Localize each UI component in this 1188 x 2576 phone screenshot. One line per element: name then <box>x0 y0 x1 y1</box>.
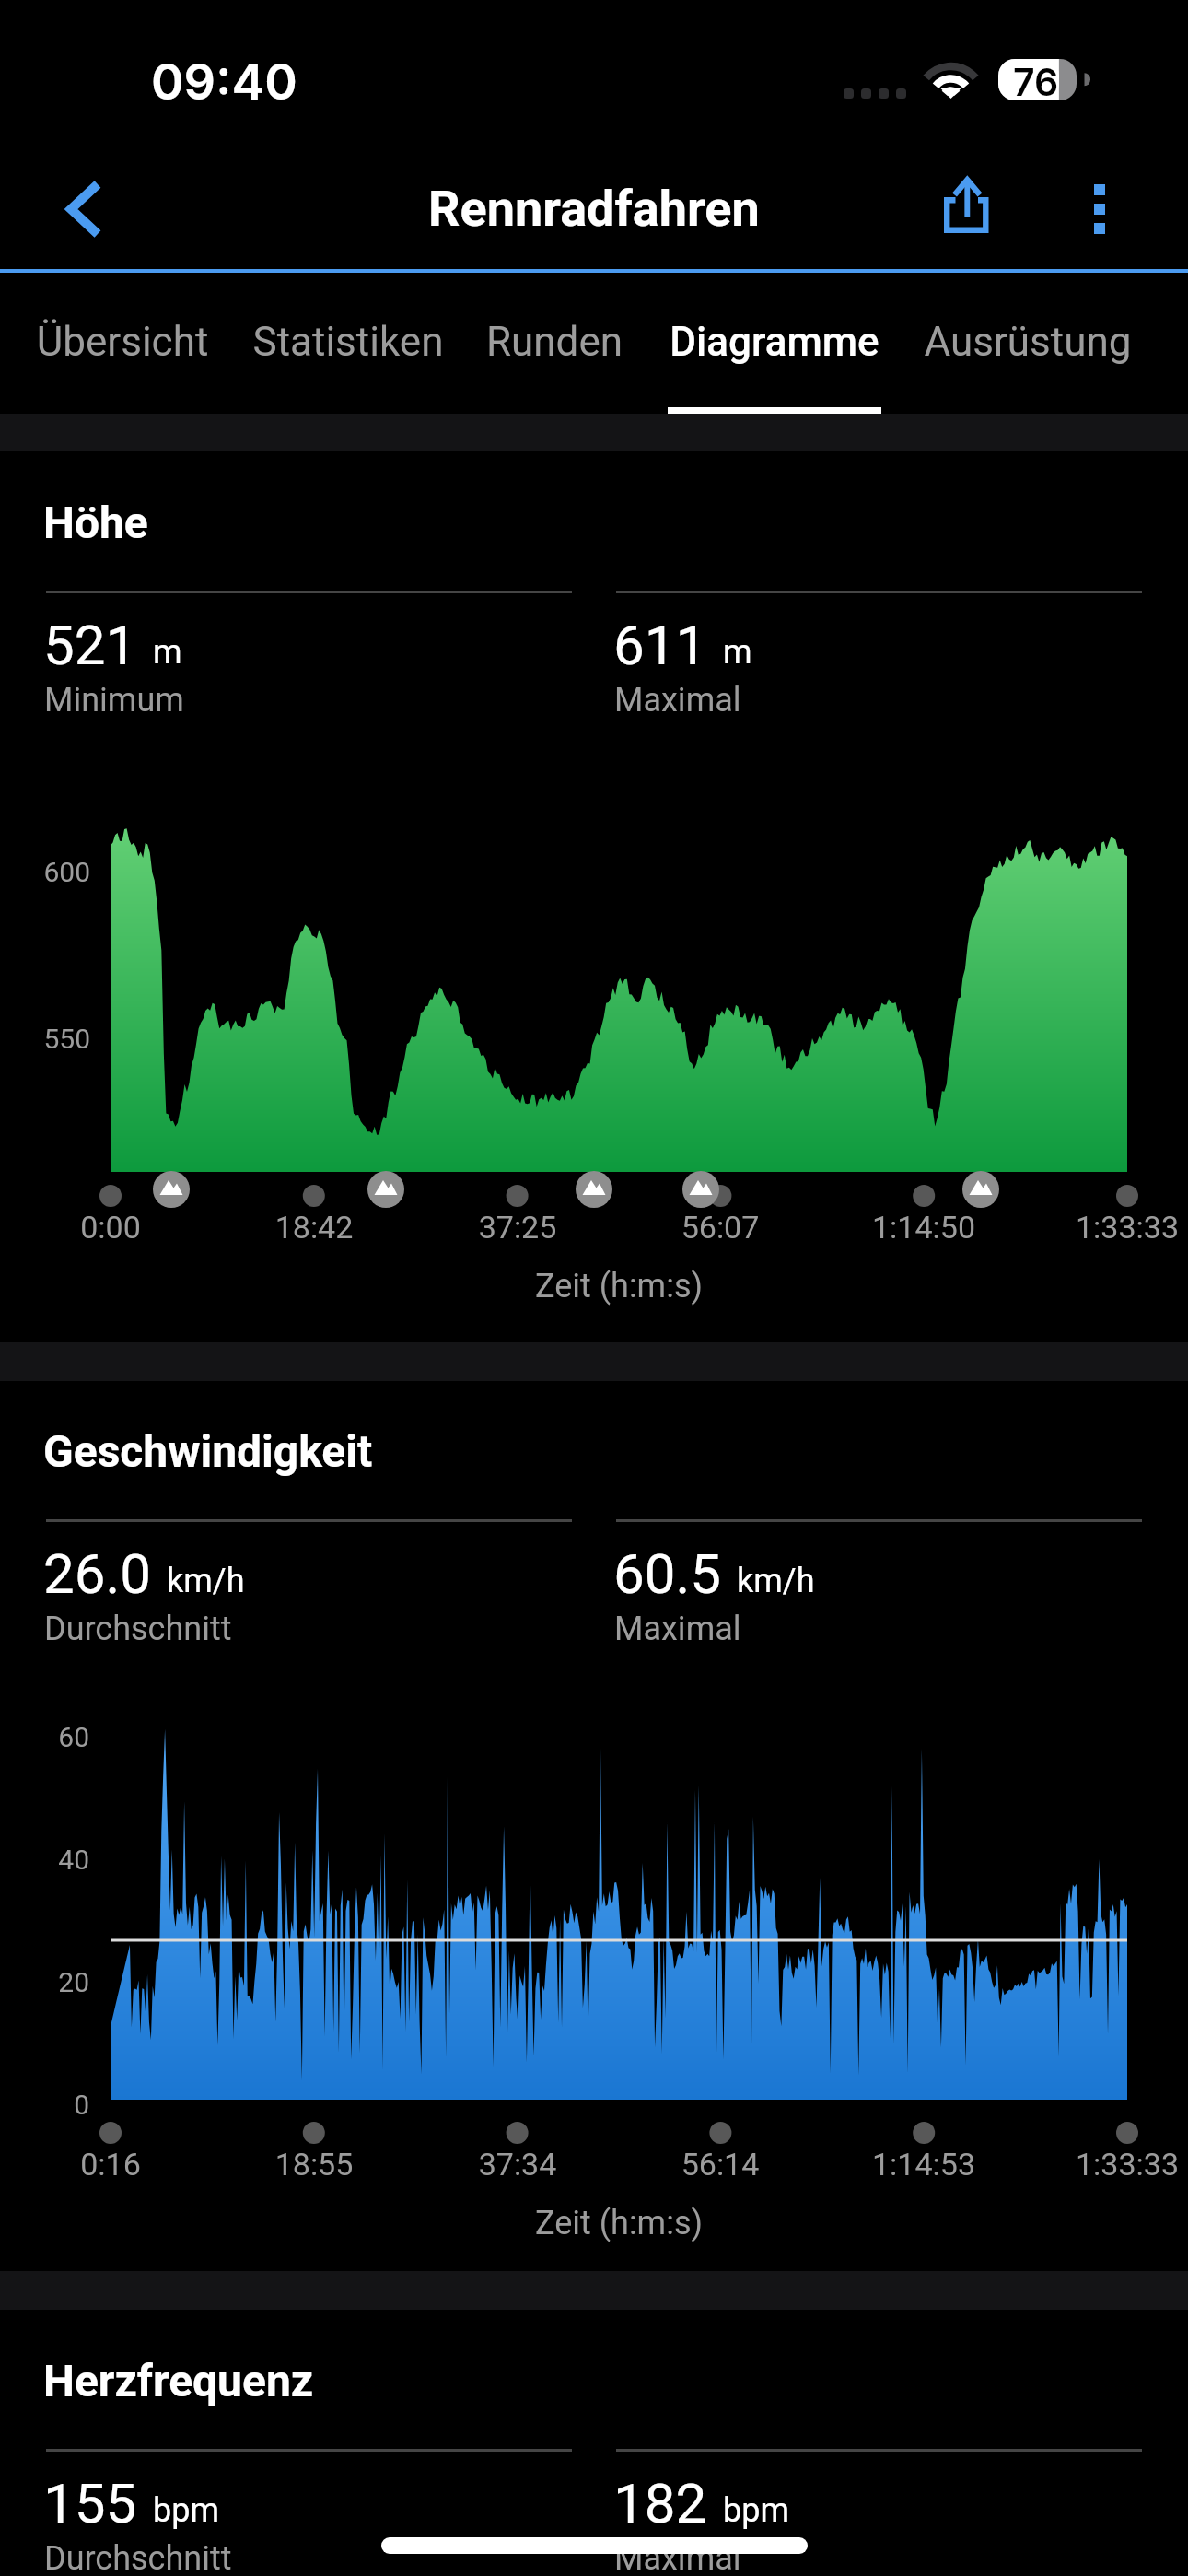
staticText: 60 <box>0 1721 89 1753</box>
staticText: 40 <box>0 1844 89 1876</box>
staticText: 1:14:53 <box>813 2146 1034 2183</box>
staticText: 76 <box>1013 59 1059 105</box>
staticText: Minimum <box>44 681 184 720</box>
staticText: 56:14 <box>610 2146 831 2183</box>
staticText: m <box>723 633 752 672</box>
button[interactable]: Runden <box>479 273 630 414</box>
button[interactable]: Übersicht <box>30 273 215 414</box>
staticText: Zeit (h:m:s) <box>398 1267 840 1306</box>
staticText: Diagramme <box>664 318 885 366</box>
staticText: Ausrüstung <box>917 318 1138 366</box>
staticText: Herzfrequenz <box>43 2355 314 2406</box>
staticText: 1:14:50 <box>813 1209 1034 1246</box>
staticText: Maximal <box>614 1610 741 1648</box>
staticText: Durchschnitt <box>44 2539 232 2576</box>
button[interactable]: Diagramme <box>664 273 885 414</box>
staticText: Übersicht <box>30 318 215 366</box>
staticText: bpm <box>723 2491 789 2530</box>
staticText: 37:25 <box>407 1209 628 1246</box>
staticText: 1:33:33 <box>1017 1209 1188 1246</box>
staticText: 182 <box>613 2471 707 2535</box>
staticText: 1:33:33 <box>1017 2146 1188 2183</box>
staticText: 0 <box>0 2089 89 2121</box>
staticText: Geschwindigkeit <box>43 1425 373 1477</box>
staticText: 37:34 <box>407 2146 628 2183</box>
staticText: m <box>153 633 182 672</box>
staticText: 521 <box>43 613 137 677</box>
staticText: Rennradfahren <box>428 180 760 238</box>
staticText: 0:00 <box>0 1209 221 1246</box>
button[interactable]: Ausrüstung <box>917 273 1138 414</box>
staticText: 550 <box>0 1023 90 1055</box>
staticText: 0:16 <box>0 2146 221 2183</box>
staticText: Höhe <box>43 497 148 548</box>
staticText: 60.5 <box>613 1541 721 1606</box>
staticText: km/h <box>737 1562 815 1600</box>
staticText: Runden <box>479 318 630 366</box>
staticText: 56:07 <box>610 1209 831 1246</box>
staticText: Statistiken <box>249 318 448 366</box>
staticText: 18:42 <box>204 1209 425 1246</box>
button[interactable]: Share <box>907 147 1027 269</box>
button[interactable]: More options <box>1048 147 1151 269</box>
staticText: 09:40 <box>151 52 297 111</box>
staticText: Zeit (h:m:s) <box>398 2204 840 2242</box>
staticText: 600 <box>0 856 90 888</box>
staticText: 611 <box>613 613 707 677</box>
staticText: 155 <box>43 2471 137 2535</box>
staticText: Maximal <box>614 2539 741 2576</box>
staticText: bpm <box>153 2491 219 2530</box>
button[interactable]: Statistiken <box>249 273 448 414</box>
staticText: Durchschnitt <box>44 1610 232 1648</box>
staticText: 18:55 <box>204 2146 425 2183</box>
staticText: 20 <box>0 1966 89 1998</box>
staticText: Maximal <box>614 681 741 720</box>
button[interactable]: Back <box>0 147 157 269</box>
staticText: km/h <box>167 1562 245 1600</box>
staticText: 26.0 <box>43 1541 151 1606</box>
